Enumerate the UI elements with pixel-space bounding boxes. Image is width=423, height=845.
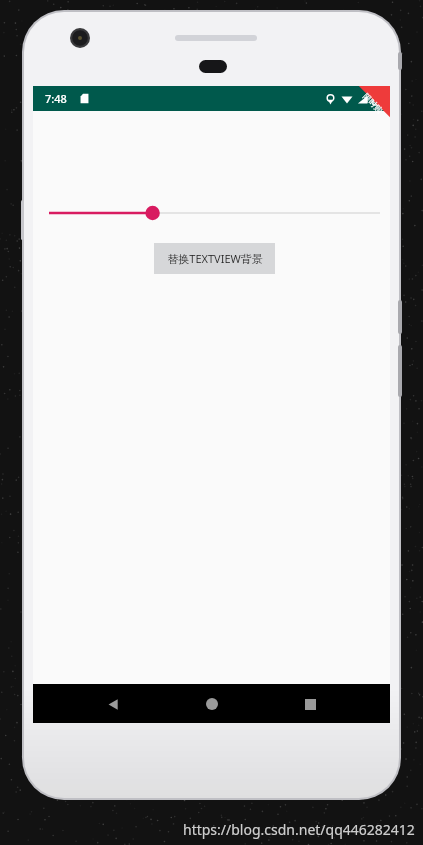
button[interactable]: Home	[195, 687, 229, 721]
staticText: 限时购	[361, 91, 385, 115]
staticText: https://blog.csdn.net/qq446282412	[183, 820, 415, 839]
staticText: 替换TEXTVIEW背景	[167, 251, 263, 266]
staticText: 7:48	[45, 91, 67, 106]
button[interactable]: 替换TEXTVIEW背景	[154, 243, 275, 274]
button[interactable]: Recent apps	[293, 687, 327, 721]
button[interactable]: Back	[96, 687, 130, 721]
